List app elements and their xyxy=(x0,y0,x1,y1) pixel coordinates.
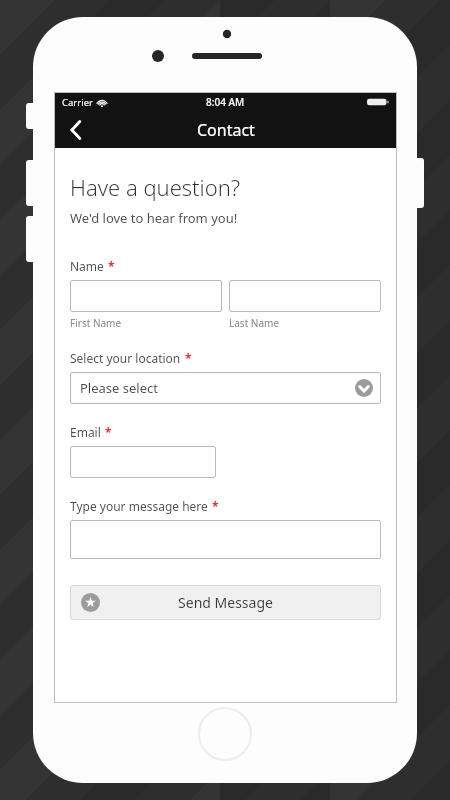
staticText: Last Name xyxy=(229,316,280,330)
staticText: Have a question? xyxy=(70,172,241,202)
staticText: We'd love to hear from you! xyxy=(70,209,238,227)
button[interactable] xyxy=(70,520,381,559)
staticText: Name xyxy=(70,258,104,274)
button[interactable]: Back xyxy=(54,112,98,148)
staticText: Carrier xyxy=(62,96,93,109)
staticText: Contact xyxy=(197,119,255,141)
staticText: Select your location xyxy=(70,350,181,366)
staticText: * xyxy=(105,424,112,440)
staticText: Type your message here xyxy=(70,498,208,514)
button[interactable]: Send Message xyxy=(70,585,381,620)
staticText: * xyxy=(108,258,115,274)
button[interactable] xyxy=(70,280,222,312)
button[interactable]: Please select xyxy=(70,372,381,404)
staticText: Please select xyxy=(80,379,158,397)
button[interactable] xyxy=(70,446,216,478)
button[interactable] xyxy=(229,280,381,312)
staticText: First Name xyxy=(70,316,122,330)
staticText: Email xyxy=(70,424,101,440)
staticText: Send Message xyxy=(178,593,273,612)
staticText: 8:04 AM xyxy=(206,95,245,109)
staticText: * xyxy=(212,498,219,514)
staticText: * xyxy=(185,350,192,366)
